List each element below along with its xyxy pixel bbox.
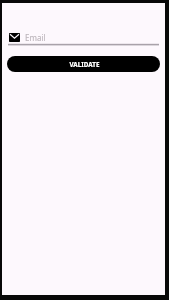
button[interactable]: VALIDATE bbox=[7, 56, 160, 72]
staticText: Email bbox=[25, 32, 46, 43]
staticText: VALIDATE bbox=[69, 60, 100, 69]
button[interactable]: Email input field bbox=[6, 30, 161, 46]
